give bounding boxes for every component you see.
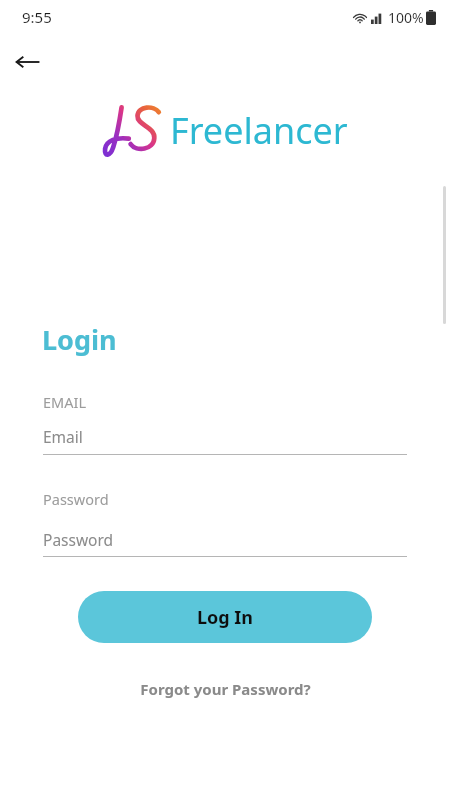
staticText: Freelancer [170,106,348,155]
staticText: Email [43,426,83,447]
button[interactable]: Back [6,40,50,84]
staticText: 9:55 [22,7,52,27]
staticText: Login [42,321,117,358]
staticText: Password [43,529,114,550]
button[interactable]: Log In [78,591,372,643]
staticText: Forgot your Password? [140,679,311,699]
staticText: Log In [197,605,254,630]
staticText: 100% [388,8,424,27]
button[interactable]: Forgot your Password? [0,675,450,703]
staticText: Password [43,489,109,509]
staticText: EMAIL [43,392,86,412]
